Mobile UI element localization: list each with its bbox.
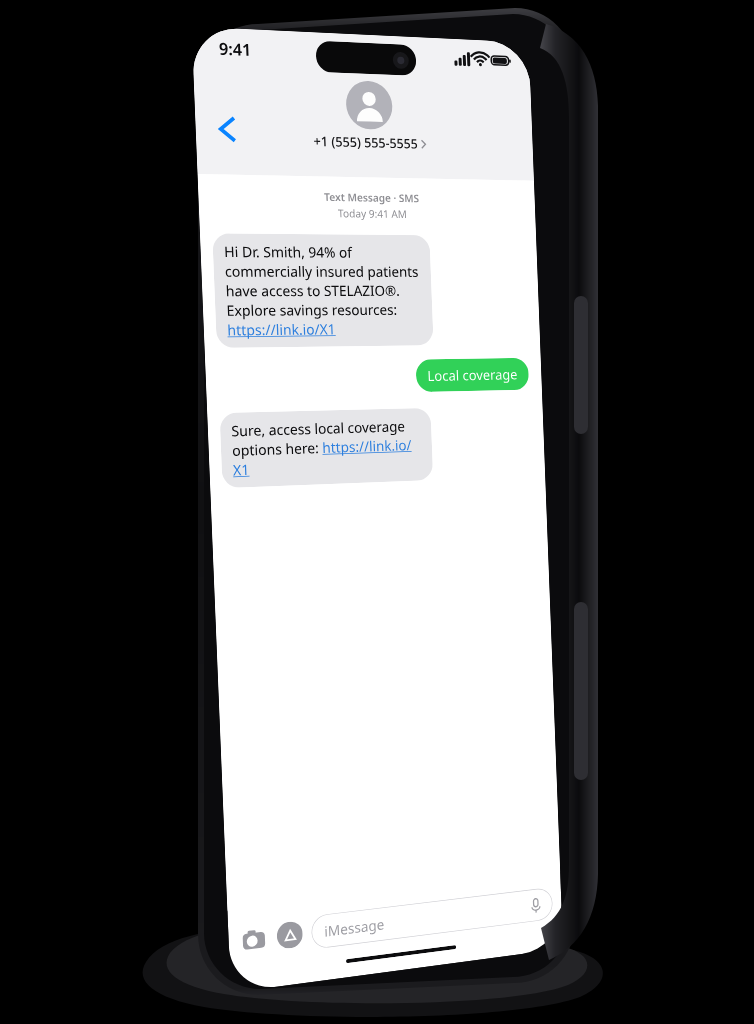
button[interactable]: Hi Dr. Smith, 94% of commercially insure… (212, 233, 434, 348)
button[interactable]: +1 (555) 555-5555 (311, 79, 426, 153)
button[interactable]: Camera (238, 922, 270, 957)
staticText: 9:41 (218, 37, 252, 61)
button[interactable]: Apps (276, 920, 303, 950)
staticText: +1 (555) 555-5555 (313, 132, 419, 153)
staticText: Hi Dr. Smith, 94% of commercially insure… (224, 242, 423, 340)
button[interactable]: iMessage (311, 887, 553, 949)
button[interactable]: Back (203, 106, 249, 152)
button[interactable]: Local coverage (415, 358, 529, 392)
staticText: Today 9:41 AM (199, 204, 535, 223)
button[interactable]: Sure, access local coverage options here… (219, 408, 433, 488)
staticText: Text Message · SMS (198, 187, 535, 207)
staticText: Local coverage (427, 365, 518, 385)
staticText: Sure, access local coverage options here… (231, 416, 423, 480)
staticText: iMessage (324, 914, 385, 941)
